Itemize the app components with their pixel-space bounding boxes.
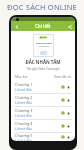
staticText: Lời mở đầu: [15, 127, 32, 131]
button[interactable]: ĐỌC SÁCH ONLINE: [0, 0, 84, 13]
button[interactable]: Chương 5: [11, 133, 75, 141]
button[interactable]: Xem tất cả: [54, 74, 71, 79]
staticText: Chương 4: [15, 121, 33, 126]
staticText: Lời mở đầu: [15, 114, 32, 118]
staticText: Lời mở đầu: [15, 101, 32, 105]
button[interactable]: Download: [60, 84, 66, 90]
staticText: Tác giả: Dale Carnegie: [11, 67, 75, 71]
staticText: Lời mở đầu: [15, 139, 32, 141]
button[interactable]: More options: [66, 111, 71, 116]
button[interactable]: Chương 1: [11, 81, 75, 94]
button[interactable]: More options: [66, 124, 71, 129]
staticText: Chương 3: [15, 108, 33, 113]
staticText: ĐẮC NHÂN TÂM: [11, 59, 75, 65]
button[interactable]: More options: [66, 98, 71, 103]
staticText: Chương 5: [15, 133, 33, 138]
staticText: ĐỌC SÁCH ONLINE: [7, 2, 77, 12]
button[interactable]: [33, 34, 54, 57]
button[interactable]: Chương 3: [11, 107, 75, 120]
button[interactable]: Download: [60, 97, 66, 103]
button[interactable]: Chương 2: [11, 94, 75, 107]
staticText: Mục lục: [15, 74, 28, 79]
button[interactable]: More options: [66, 135, 71, 140]
button[interactable]: Download: [60, 134, 66, 140]
button[interactable]: Chương 4: [11, 120, 75, 133]
button[interactable]: More options: [66, 85, 71, 90]
button[interactable]: Back: [13, 23, 20, 30]
button[interactable]: Download: [60, 110, 66, 116]
button[interactable]: Download: [60, 123, 66, 129]
staticText: Chương 2: [15, 95, 33, 100]
staticText: Lời mở đầu: [15, 88, 32, 92]
staticText: Chi tiết: [35, 23, 51, 29]
button[interactable]: Share: [66, 23, 73, 30]
staticText: Chương 1: [15, 82, 33, 87]
